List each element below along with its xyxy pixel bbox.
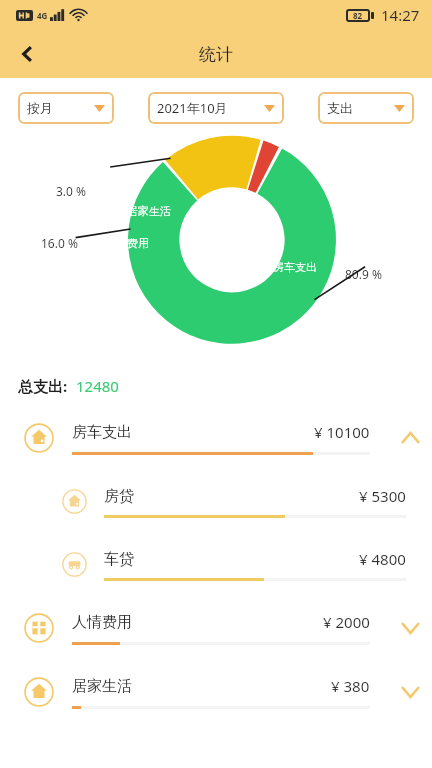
- button[interactable]: 车贷: [0, 533, 432, 596]
- staticText: ¥ 5300: [359, 486, 406, 506]
- staticText: 2021年10月: [157, 99, 228, 117]
- staticText: ¥ 380: [331, 676, 370, 696]
- staticText: 按月: [27, 100, 53, 116]
- button[interactable]: 人情费用: [0, 596, 432, 660]
- button[interactable]: Expand: [388, 670, 432, 714]
- button[interactable]: 2021年10月: [148, 92, 284, 124]
- button[interactable]: Collapse: [388, 416, 432, 460]
- staticText: 人情费用: [72, 613, 132, 632]
- button[interactable]: 房贷: [0, 470, 432, 533]
- staticText: 支出: [327, 100, 353, 116]
- staticText: 居家生活: [72, 677, 132, 696]
- staticText: ¥ 4800: [359, 549, 406, 569]
- button[interactable]: 按月: [18, 92, 114, 124]
- button[interactable]: Expand: [388, 606, 432, 650]
- staticText: 16.0 %: [41, 235, 78, 251]
- button[interactable]: Back: [8, 34, 48, 74]
- staticText: 车贷: [104, 550, 134, 569]
- button[interactable]: 房车支出: [0, 406, 432, 470]
- staticText: 房车支出: [273, 260, 317, 274]
- staticText: 3.0 %: [56, 183, 87, 199]
- staticText: ¥ 10100: [314, 422, 370, 442]
- staticText: 统计: [199, 44, 233, 65]
- staticText: 12480: [76, 376, 119, 396]
- staticText: 总支出:: [18, 376, 68, 396]
- staticText: 人情费用: [105, 236, 149, 250]
- button[interactable]: 居家生活: [0, 660, 432, 724]
- staticText: ¥ 2000: [323, 612, 370, 632]
- staticText: 80.9 %: [345, 266, 382, 282]
- staticText: 82: [353, 10, 363, 21]
- staticText: 4G: [37, 10, 48, 21]
- button[interactable]: 支出: [318, 92, 414, 124]
- staticText: 14:27: [381, 5, 420, 25]
- staticText: 居家生活: [127, 204, 171, 218]
- staticText: 房贷: [104, 487, 134, 506]
- staticText: 房车支出: [72, 423, 132, 442]
